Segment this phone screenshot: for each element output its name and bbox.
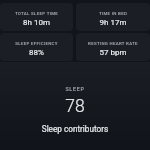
button[interactable]: RESTING HEART RATE xyxy=(76,33,150,61)
button[interactable]: TOTAL SLEEP TIME xyxy=(0,3,73,31)
staticText: 78 xyxy=(0,96,150,117)
staticText: 57 bpm xyxy=(76,48,150,57)
button[interactable]: Sleep contributors xyxy=(0,124,150,134)
staticText: SLEEP EFFICIENCY xyxy=(0,41,73,46)
staticText: 9h 17m xyxy=(76,18,150,27)
button[interactable]: SLEEP EFFICIENCY xyxy=(0,33,73,61)
button[interactable]: TIME IN BED xyxy=(76,3,150,31)
staticText: TOTAL SLEEP TIME xyxy=(0,11,73,16)
staticText: 8h 10m xyxy=(0,18,73,27)
staticText: TIME IN BED xyxy=(76,11,150,16)
staticText: 88% xyxy=(0,48,73,57)
staticText: RESTING HEART RATE xyxy=(76,41,150,46)
staticText: SLEEP xyxy=(0,86,150,92)
